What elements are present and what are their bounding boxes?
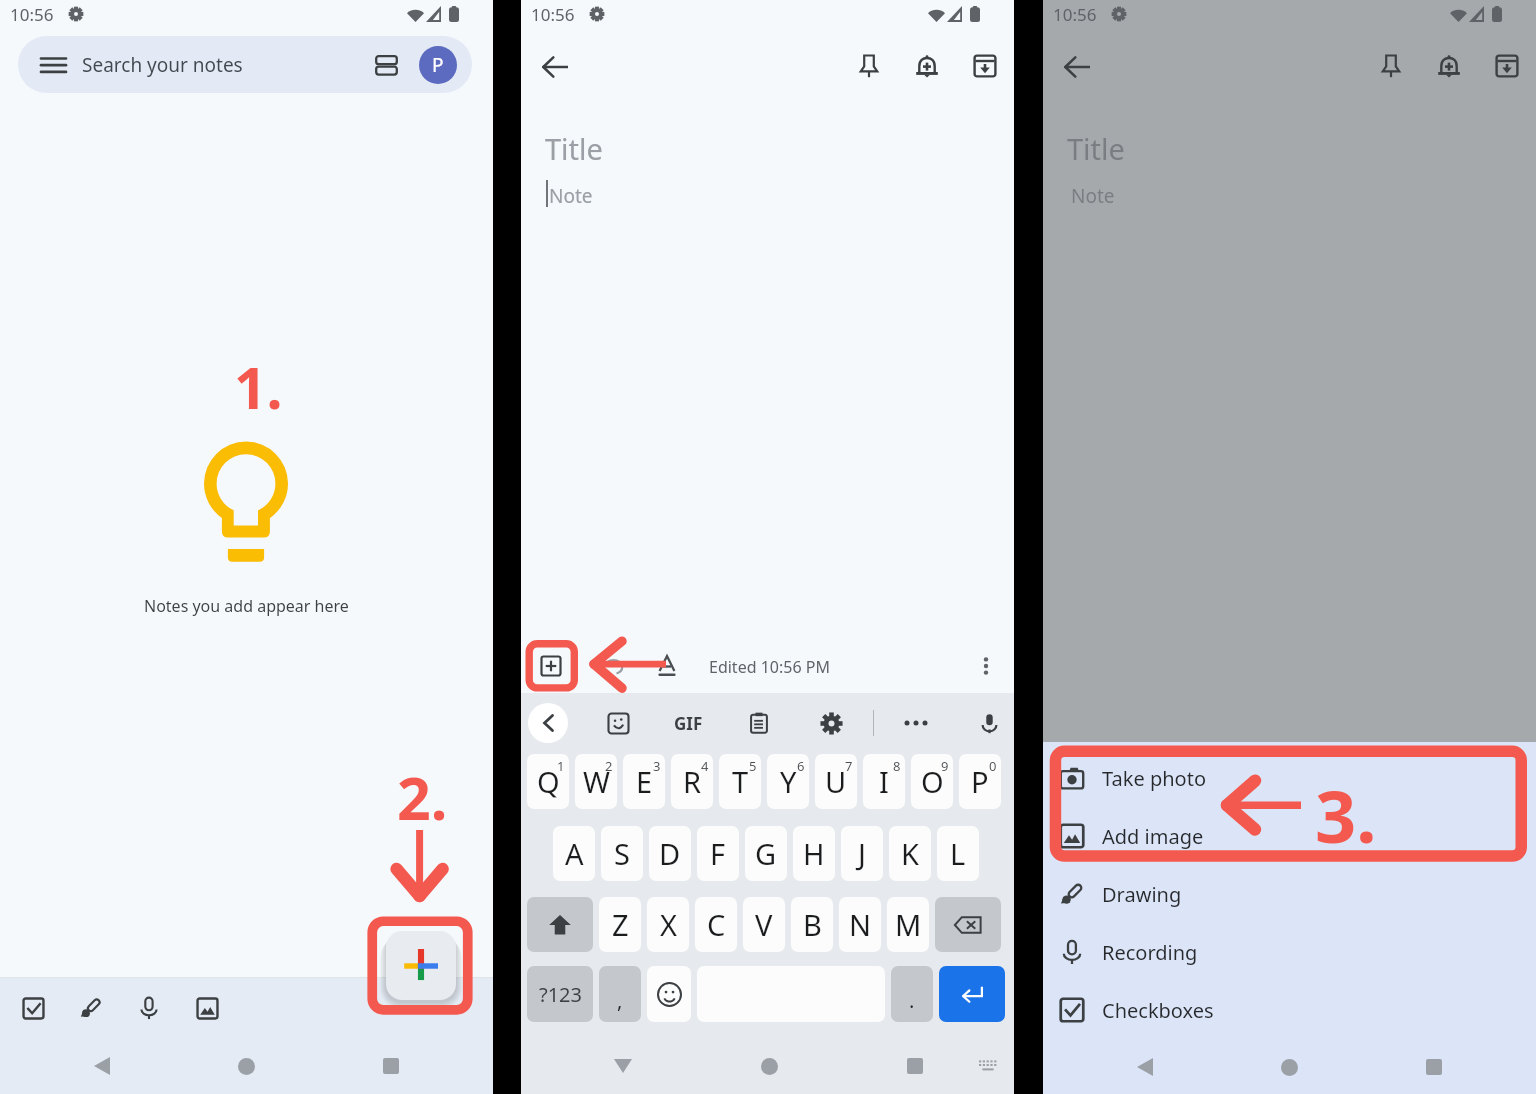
button[interactable]: ?123 — [527, 966, 593, 1022]
button[interactable]: Q — [527, 754, 569, 809]
button[interactable]: U — [815, 754, 857, 809]
staticText: 7 — [845, 757, 853, 775]
button[interactable]: Emoji — [647, 966, 691, 1022]
staticText: P — [432, 52, 444, 78]
button[interactable]: New recording — [129, 988, 169, 1028]
button[interactable]: K — [889, 826, 931, 881]
staticText: Checkboxes — [1102, 997, 1214, 1024]
button[interactable]: Add — [531, 646, 571, 686]
button[interactable]: New list — [13, 988, 53, 1028]
button[interactable]: C — [695, 897, 737, 952]
button[interactable]: Voice input — [969, 703, 1009, 743]
button[interactable]: I — [863, 754, 905, 809]
staticText: S — [614, 834, 630, 873]
button[interactable]: New drawing — [71, 988, 111, 1028]
staticText: 8 — [893, 757, 901, 775]
button[interactable]: Home — [1274, 1052, 1304, 1082]
button[interactable]: Back — [87, 1051, 117, 1081]
button[interactable]: J — [841, 826, 883, 881]
button[interactable]: . — [891, 966, 933, 1022]
staticText: T — [732, 762, 749, 801]
button[interactable]: Reminder — [1427, 44, 1471, 88]
button[interactable]: Stickers — [598, 703, 638, 743]
button[interactable]: Back — [608, 1051, 638, 1081]
button[interactable]: T — [719, 754, 761, 809]
button[interactable]: Shift — [527, 897, 593, 952]
button[interactable]: Enter — [939, 966, 1005, 1022]
staticText: F — [710, 834, 726, 873]
button[interactable]: R — [671, 754, 713, 809]
staticText: Edited 10:56 PM — [709, 656, 830, 678]
button[interactable]: Recents — [900, 1051, 930, 1081]
staticText: Search your notes — [82, 52, 243, 78]
staticText: L — [950, 834, 966, 873]
staticText: 10:56 — [531, 3, 575, 26]
button[interactable]: Backspace — [935, 897, 1001, 952]
staticText: ?123 — [539, 981, 582, 1008]
button[interactable]: F — [697, 826, 739, 881]
button[interactable]: S — [601, 826, 643, 881]
button[interactable]: Home — [754, 1051, 784, 1081]
button[interactable]: Home — [231, 1051, 261, 1081]
button[interactable]: Create new note — [386, 931, 456, 1000]
button[interactable]: Back — [1130, 1052, 1160, 1082]
button[interactable]: Settings — [811, 703, 851, 743]
button[interactable]: Formatting options — [647, 646, 687, 686]
staticText: B — [803, 905, 822, 944]
button[interactable]: , — [599, 966, 641, 1022]
button[interactable]: Recents — [376, 1051, 406, 1081]
button[interactable]: Recents — [1419, 1052, 1449, 1082]
staticText: Take photo — [1102, 765, 1206, 792]
button[interactable]: L — [937, 826, 979, 881]
staticText: . — [909, 987, 915, 1014]
button[interactable]: GIF — [668, 703, 708, 743]
button[interactable]: Undo — [593, 646, 633, 686]
button[interactable]: Add image — [1043, 807, 1536, 865]
staticText: 6 — [797, 757, 805, 775]
button[interactable]: Pin — [1369, 44, 1413, 88]
button[interactable]: Checkboxes — [1043, 981, 1536, 1039]
button[interactable]: X — [647, 897, 689, 952]
button[interactable]: Y — [767, 754, 809, 809]
staticText: U — [825, 762, 847, 801]
button[interactable]: Account — [419, 46, 457, 84]
button[interactable]: Z — [599, 897, 641, 952]
button[interactable]: Archive — [963, 44, 1007, 88]
button[interactable]: More — [896, 703, 936, 743]
button[interactable]: Back — [533, 44, 578, 89]
button[interactable]: Change view — [370, 49, 402, 81]
button[interactable]: G — [745, 826, 787, 881]
button[interactable]: A — [553, 826, 595, 881]
button[interactable]: Back — [1055, 44, 1100, 89]
button[interactable]: N — [839, 897, 881, 952]
staticText: Y — [780, 762, 797, 801]
button[interactable]: H — [793, 826, 835, 881]
button[interactable]: D — [649, 826, 691, 881]
button[interactable]: M — [887, 897, 929, 952]
button[interactable]: Search your notes — [18, 36, 472, 93]
staticText: Title — [1067, 129, 1125, 168]
button[interactable]: O — [911, 754, 953, 809]
button[interactable]: Reminder — [905, 44, 949, 88]
button[interactable]: Pin — [847, 44, 891, 88]
button[interactable]: New note with image — [187, 988, 227, 1028]
staticText: , — [617, 987, 623, 1014]
button[interactable]: P — [959, 754, 1001, 809]
button[interactable]: Clipboard — [739, 703, 779, 743]
button[interactable]: Take photo — [1043, 749, 1536, 807]
staticText: Note — [1071, 183, 1115, 209]
staticText: 1. — [234, 348, 283, 426]
button[interactable]: Close toolbar — [528, 703, 568, 743]
staticText: M — [895, 905, 922, 944]
button[interactable]: Drawing — [1043, 865, 1536, 923]
button[interactable]: E — [623, 754, 665, 809]
staticText: GIF — [674, 712, 703, 735]
button[interactable]: W — [575, 754, 617, 809]
button[interactable]: V — [743, 897, 785, 952]
button[interactable]: Recording — [1043, 923, 1536, 981]
button[interactable]: More options — [966, 646, 1006, 686]
button[interactable]: Archive — [1485, 44, 1529, 88]
staticText: 2 — [605, 757, 613, 775]
button[interactable]: B — [791, 897, 833, 952]
